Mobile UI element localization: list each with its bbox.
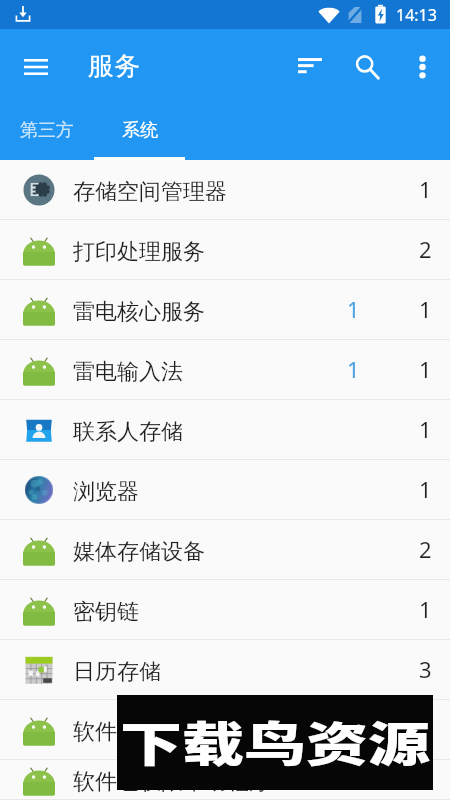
button[interactable]: Menu — [12, 43, 60, 91]
staticText: 软件包安装程序 — [73, 718, 227, 746]
button[interactable]: 软件包安装程序 — [0, 700, 450, 760]
button[interactable]: 打印处理服务 — [0, 220, 450, 280]
staticText: 存储空间管理器 — [73, 178, 227, 206]
staticText: 1 — [419, 414, 432, 444]
button[interactable]: 雷电输入法 — [0, 340, 450, 400]
staticText: 1 — [419, 354, 432, 384]
staticText: 2 — [419, 534, 432, 564]
staticText: 服务 — [88, 50, 140, 83]
button[interactable]: 第三方 — [0, 105, 93, 160]
button[interactable]: Sort — [286, 41, 334, 89]
staticText: 联系人存储 — [73, 418, 183, 446]
staticText: 1 — [419, 174, 432, 204]
button[interactable]: 系统 — [93, 105, 186, 160]
button[interactable]: 存储空间管理器 — [0, 160, 450, 220]
staticText: 1 — [347, 294, 360, 324]
staticText: 1 — [419, 764, 432, 794]
staticText: 1 — [419, 714, 432, 744]
staticText: 雷电核心服务 — [73, 298, 205, 326]
staticText: 系统 — [122, 119, 158, 142]
staticText: 媒体存储设备 — [73, 538, 205, 566]
button[interactable]: 软件包权限帮助程序 — [0, 760, 450, 800]
staticText: 软件包权限帮助程序 — [73, 768, 271, 796]
button[interactable]: 浏览器 — [0, 460, 450, 520]
staticText: 1 — [419, 474, 432, 504]
staticText: 1 — [419, 294, 432, 324]
staticText: 第三方 — [20, 119, 74, 142]
button[interactable]: 密钥链 — [0, 580, 450, 640]
staticText: 1 — [347, 354, 360, 384]
staticText: 雷电输入法 — [73, 358, 183, 386]
button[interactable]: 媒体存储设备 — [0, 520, 450, 580]
button[interactable]: 日历存储 — [0, 640, 450, 700]
button[interactable]: 雷电核心服务 — [0, 280, 450, 340]
staticText: 打印处理服务 — [73, 238, 205, 266]
staticText: 日历存储 — [73, 658, 161, 686]
staticText: 3 — [419, 654, 432, 684]
button[interactable]: More options — [398, 43, 446, 91]
staticText: 2 — [419, 234, 432, 264]
staticText: 下载鸟资源 — [120, 706, 431, 774]
staticText: 密钥链 — [73, 598, 139, 626]
staticText: 1 — [419, 594, 432, 624]
button[interactable]: Search — [343, 43, 391, 91]
button[interactable]: 联系人存储 — [0, 400, 450, 460]
staticText: 浏览器 — [73, 478, 139, 506]
staticText: 14:13 — [396, 4, 437, 26]
